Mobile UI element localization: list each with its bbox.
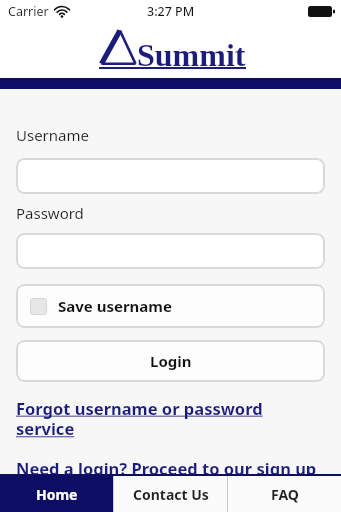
button[interactable]: FAQ xyxy=(228,476,341,512)
button[interactable]: Home xyxy=(0,476,113,512)
staticText: FAQ xyxy=(271,485,299,504)
button[interactable]: Save username xyxy=(16,284,325,328)
button[interactable] xyxy=(16,158,325,194)
staticText: Save username xyxy=(58,296,172,316)
staticText: Home xyxy=(36,485,78,504)
button[interactable] xyxy=(16,233,325,269)
staticText: Contact Us xyxy=(133,485,209,504)
button[interactable]: Forgot username or password service xyxy=(16,397,263,440)
button[interactable]: Need a login? Proceed to our sign up xyxy=(16,457,317,474)
staticText: Username xyxy=(16,125,89,145)
staticText: 3:27 PM xyxy=(147,3,195,20)
button[interactable]: Login xyxy=(16,340,325,382)
staticText: Login xyxy=(150,351,192,371)
staticText: Carrier xyxy=(8,3,49,20)
staticText: Password xyxy=(16,203,84,223)
staticText: Summit xyxy=(137,37,246,72)
button[interactable]: Contact Us xyxy=(114,476,227,512)
